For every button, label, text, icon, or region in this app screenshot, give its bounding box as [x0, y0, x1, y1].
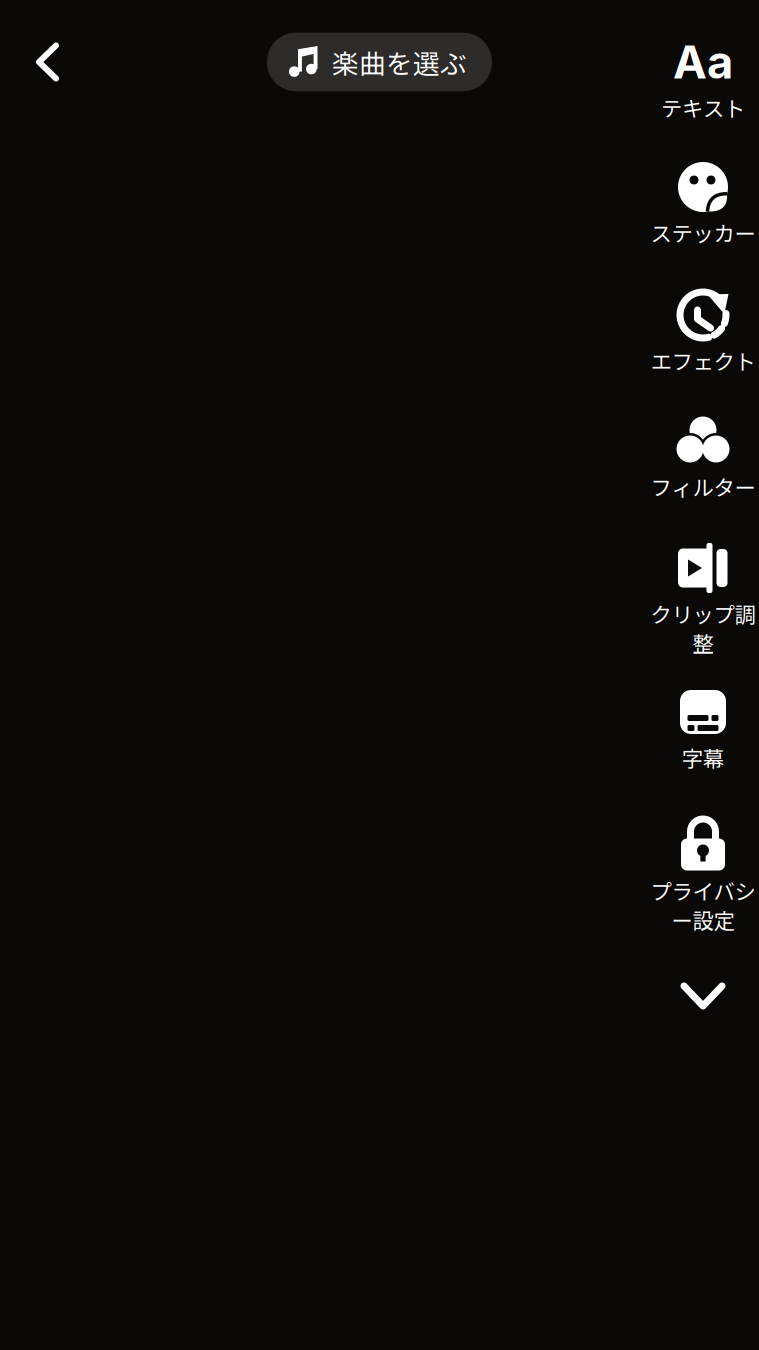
staticText: ステッカー: [650, 217, 755, 248]
staticText: プライバシ: [650, 875, 755, 906]
staticText: テキスト: [661, 92, 745, 123]
button[interactable]: プライバシ: [645, 772, 759, 934]
staticText: ー設定: [671, 904, 734, 935]
staticText: 整: [692, 627, 713, 658]
button[interactable]: 楽曲を選ぶ: [267, 33, 492, 91]
button[interactable]: Back: [0, 27, 82, 96]
staticText: 字幕: [682, 742, 724, 773]
button[interactable]: エフェクト: [645, 247, 759, 375]
staticText: 楽曲を選ぶ: [332, 43, 467, 81]
staticText: フィルター: [650, 471, 755, 502]
staticText: エフェクト: [650, 345, 755, 376]
staticText: Aa: [673, 35, 733, 89]
button[interactable]: 字幕: [645, 657, 759, 772]
button[interactable]: Aa: [645, 0, 759, 122]
button[interactable]: ステッカー: [645, 122, 759, 247]
button[interactable]: フィルター: [645, 375, 759, 501]
button[interactable]: クリップ調: [645, 501, 759, 657]
staticText: クリップ調: [650, 598, 755, 629]
button[interactable]: Collapse: [648, 934, 758, 1028]
